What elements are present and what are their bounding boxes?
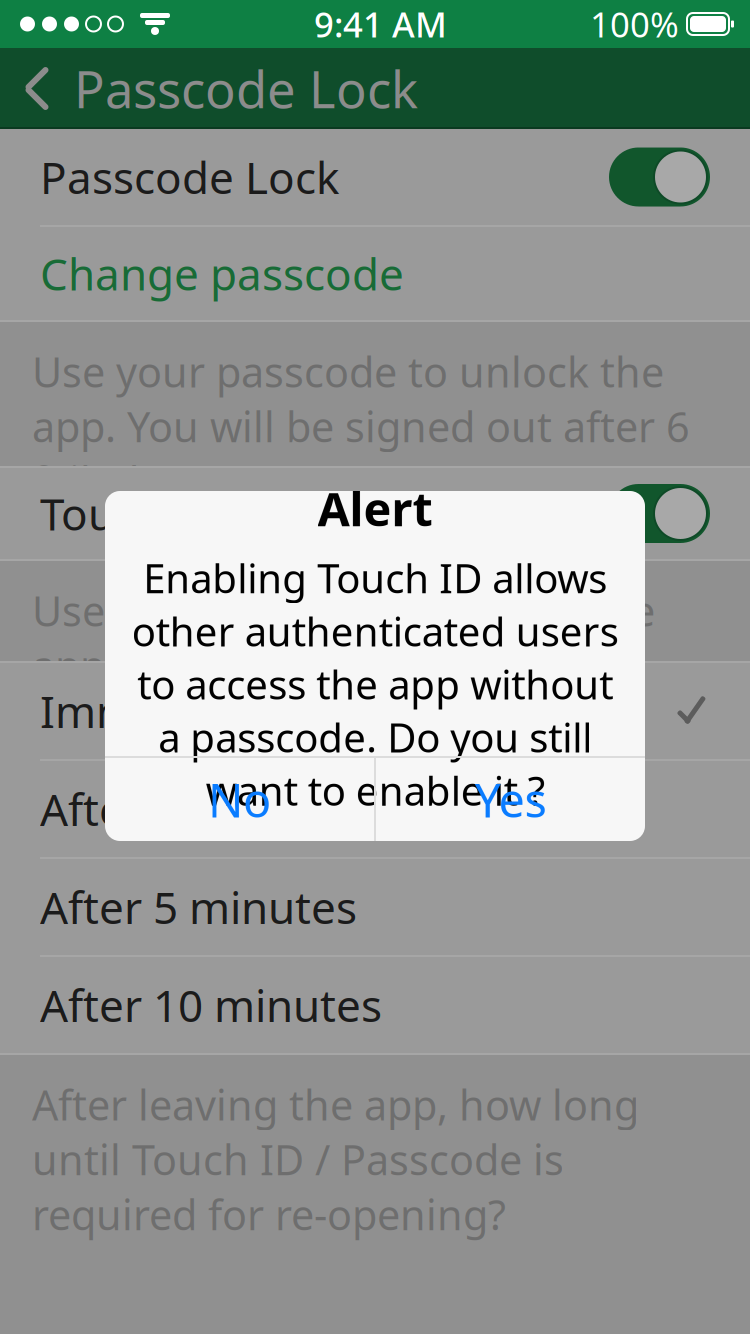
button[interactable]: Change passcode <box>0 227 750 320</box>
staticText: No <box>208 768 271 830</box>
staticText: After leaving the app, how long until To… <box>32 1077 639 1242</box>
staticText: Yes <box>474 768 546 830</box>
staticText: Passcode Lock <box>74 55 418 122</box>
staticText: After 10 minutes <box>40 976 382 1034</box>
button[interactable]: Passcode Lock <box>0 129 750 225</box>
staticText: Immediately <box>40 682 299 740</box>
staticText: Alert <box>317 477 432 539</box>
staticText: After 5 minutes <box>40 878 357 936</box>
staticText: Use your passcode to unlock the app. You… <box>32 344 690 509</box>
button[interactable]: Back <box>0 48 74 129</box>
button[interactable]: After 1 minute <box>0 761 750 857</box>
staticText: 100% <box>590 1 679 47</box>
button[interactable]: Touch ID <box>0 468 750 559</box>
staticText: 9:41 AM <box>314 1 447 47</box>
button[interactable]: After 10 minutes <box>0 957 750 1053</box>
button[interactable]: Yes <box>376 758 645 841</box>
staticText: Passcode Lock <box>40 148 339 206</box>
staticText: Use your Touch ID to unlock the app. <box>32 583 655 693</box>
button[interactable]: No <box>105 758 374 841</box>
button[interactable]: Immediately <box>0 663 750 759</box>
button[interactable]: After 5 minutes <box>0 859 750 955</box>
staticText: Enabling Touch ID allows other authentic… <box>131 551 618 817</box>
staticText: After 1 minute <box>40 780 336 838</box>
staticText: Touch ID <box>40 484 221 543</box>
staticText: Change passcode <box>40 244 404 303</box>
